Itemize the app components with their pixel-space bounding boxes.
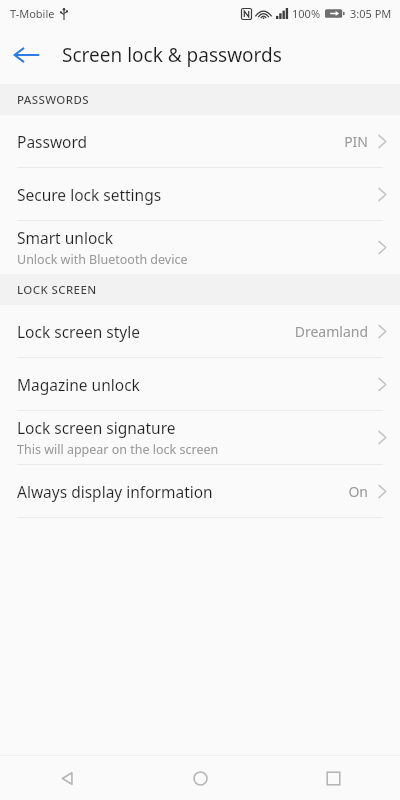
button[interactable]: Recent apps <box>267 756 400 800</box>
staticText: Magazine unlock <box>17 374 140 395</box>
staticText: Always display information <box>17 481 213 502</box>
button[interactable]: Lock screen signature <box>0 411 400 464</box>
button[interactable]: Back <box>0 756 134 800</box>
button[interactable]: Smart unlock <box>0 221 400 274</box>
staticText: Smart unlock <box>17 227 113 248</box>
button[interactable]: Secure lock settings <box>0 168 400 220</box>
staticText: Secure lock settings <box>17 184 162 205</box>
staticText: This will appear on the lock screen <box>17 441 219 458</box>
button[interactable]: Lock screen style <box>0 305 400 357</box>
staticText: Lock screen signature <box>17 417 176 438</box>
staticText: 100% <box>292 6 321 21</box>
staticText: T-Mobile <box>10 6 55 21</box>
button[interactable]: Magazine unlock <box>0 358 400 410</box>
staticText: On <box>348 482 368 501</box>
button[interactable]: Password <box>0 115 400 167</box>
staticText: Password <box>17 131 88 152</box>
button[interactable]: Home <box>134 756 267 800</box>
staticText: LOCK SCREEN <box>17 282 97 298</box>
staticText: PASSWORDS <box>17 92 89 108</box>
button[interactable]: Always display information <box>0 465 400 517</box>
button[interactable]: Back <box>0 29 52 81</box>
staticText: PIN <box>344 132 368 151</box>
staticText: Unlock with Bluetooth device <box>17 251 188 268</box>
staticText: Lock screen style <box>17 321 140 342</box>
staticText: Screen lock & passwords <box>62 42 282 68</box>
staticText: 3:05 PM <box>350 6 392 21</box>
staticText: Dreamland <box>294 322 368 341</box>
